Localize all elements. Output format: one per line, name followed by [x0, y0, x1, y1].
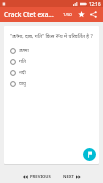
button[interactable]: गति	[10, 56, 94, 67]
button[interactable]: Favourite	[76, 9, 87, 20]
staticText: नदी	[19, 69, 26, 76]
button[interactable]: PREVIOUS	[20, 172, 54, 182]
staticText: वायु	[19, 80, 26, 87]
staticText: "ऊष्मा, दाब, गति" किस रूप में परिवर्तित …	[10, 32, 93, 39]
staticText: Crack Ctet exa...	[4, 10, 54, 19]
button[interactable]: Report question	[83, 148, 96, 161]
button[interactable]: वायु	[10, 78, 94, 89]
staticText: PREVIOUS	[30, 174, 51, 180]
staticText: 1/50	[63, 12, 72, 18]
staticText: NEXT	[63, 174, 74, 180]
button[interactable]: NEXT	[60, 172, 84, 182]
button[interactable]: नदी	[10, 67, 94, 78]
staticText: ऊष्मा	[19, 47, 29, 54]
staticText: 12:16	[89, 1, 101, 7]
button[interactable]: ऊष्मा	[10, 45, 94, 56]
staticText: गति	[19, 58, 26, 65]
button[interactable]: Share	[88, 9, 99, 20]
